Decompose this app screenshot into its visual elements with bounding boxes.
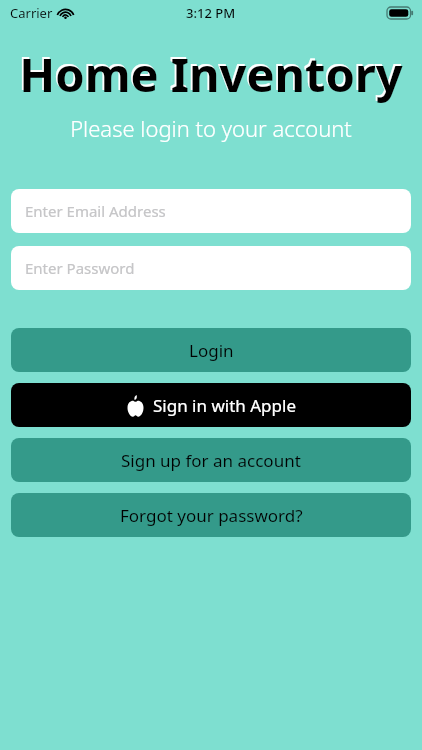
button[interactable]: Sign in with Apple: [11, 383, 411, 427]
staticText: Sign up for an account: [121, 449, 301, 472]
staticText: 3:12 PM: [186, 4, 236, 22]
staticText: Login: [189, 339, 234, 362]
staticText: Home Inventory: [0, 42, 422, 106]
staticText: Enter Password: [25, 258, 135, 278]
button[interactable]: Sign up for an account: [11, 438, 411, 482]
staticText: Enter Email Address: [25, 201, 166, 221]
button[interactable]: Login: [11, 328, 411, 372]
button[interactable]: Enter Email Address: [11, 189, 411, 233]
staticText: Forgot your password?: [120, 504, 303, 527]
staticText: Carrier: [10, 4, 53, 22]
staticText: Sign in with Apple: [153, 394, 296, 417]
staticText: Please login to your account: [0, 113, 422, 143]
button[interactable]: Forgot your password?: [11, 493, 411, 537]
button[interactable]: Enter Password: [11, 246, 411, 290]
staticText: Home Inventory: [0, 40, 419, 104]
